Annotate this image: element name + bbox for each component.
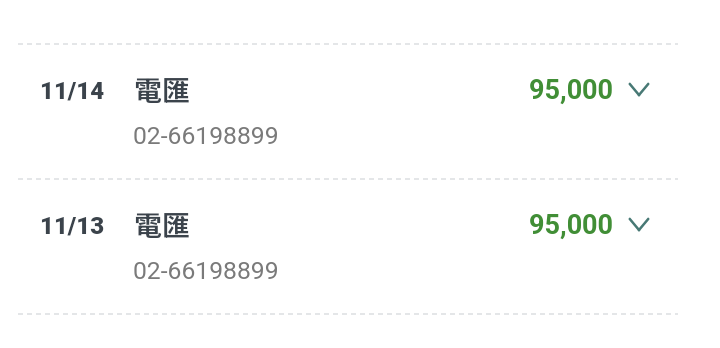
staticText: 95,000 (529, 209, 614, 241)
button[interactable]: Show transaction details (615, 200, 663, 248)
staticText: 11/14 (40, 77, 105, 105)
button[interactable]: Show transaction details (615, 65, 663, 113)
staticText: 95,000 (529, 74, 614, 106)
button[interactable]: 11/14 (0, 45, 720, 178)
staticText: 電匯 (134, 204, 191, 245)
staticText: 電匯 (134, 69, 191, 110)
staticText: 11/13 (40, 212, 105, 240)
button[interactable]: 11/13 (0, 180, 720, 313)
staticText: 02-66198899 (133, 256, 279, 285)
staticText: 02-66198899 (133, 121, 279, 150)
